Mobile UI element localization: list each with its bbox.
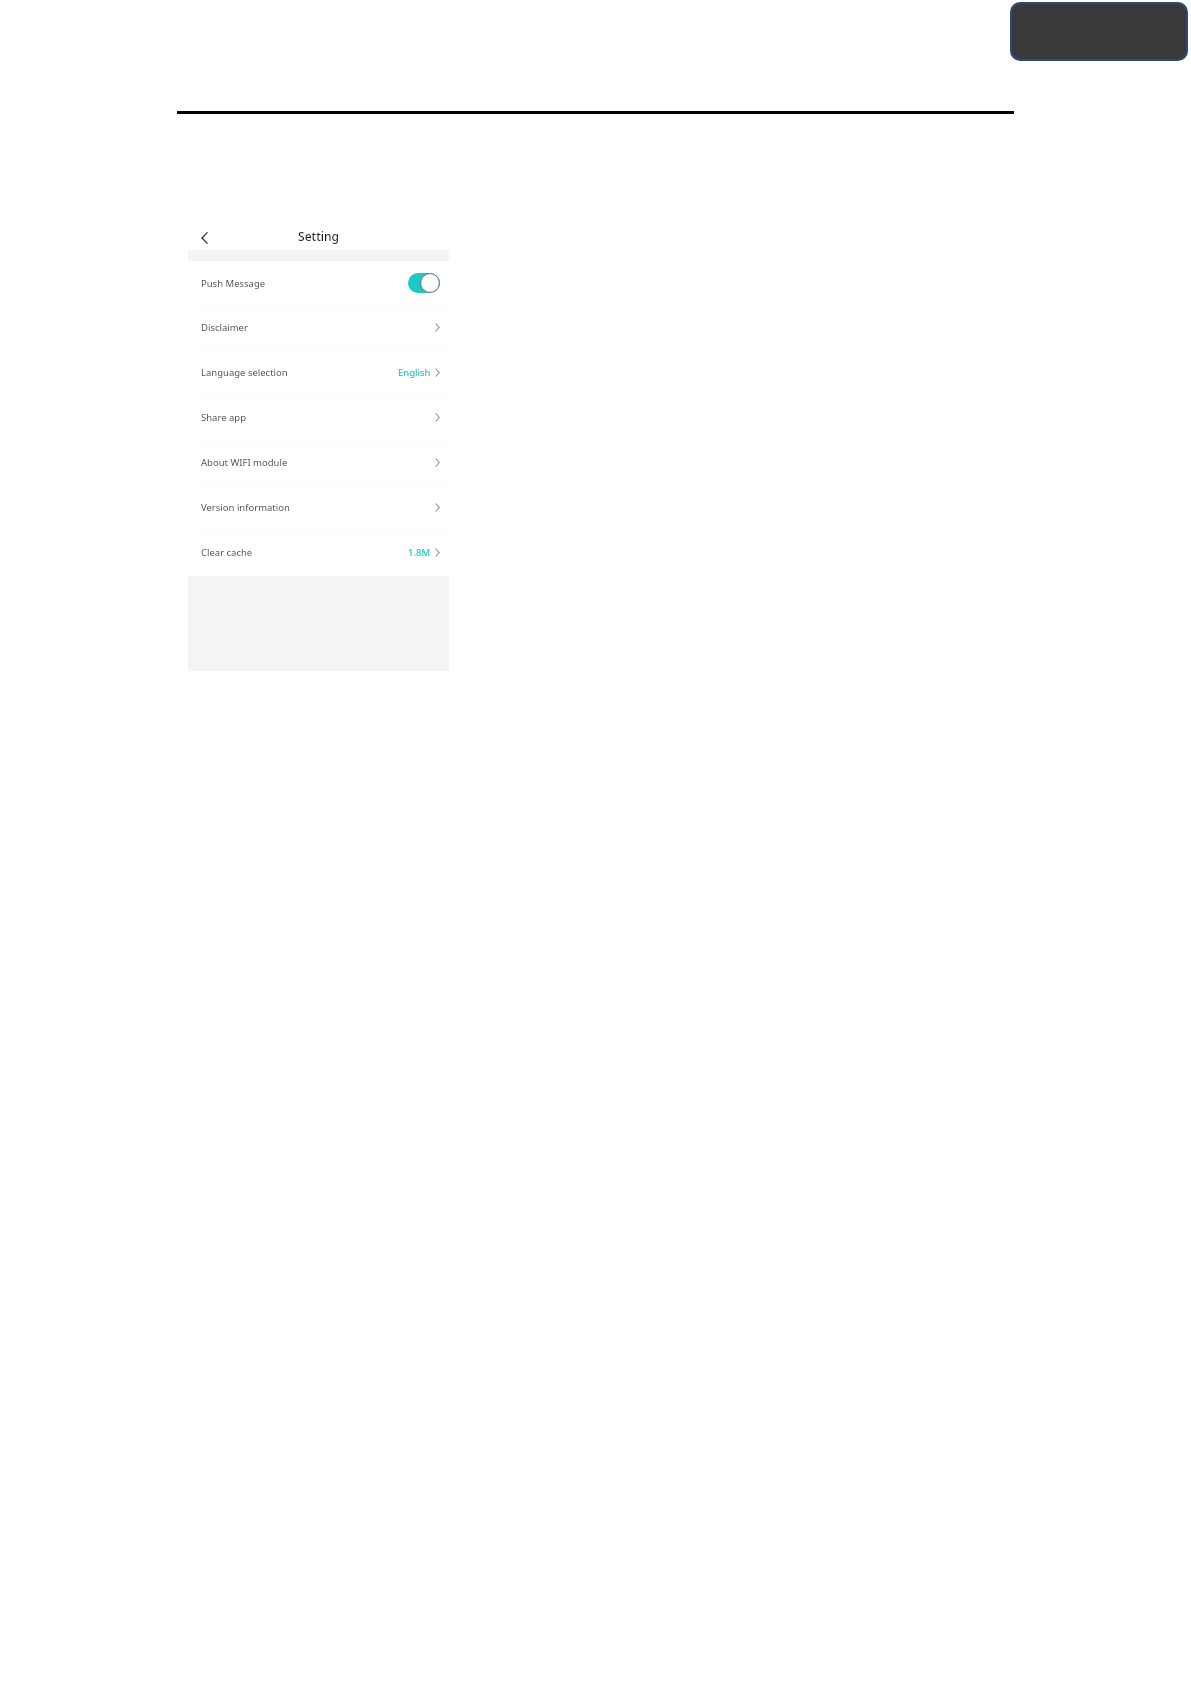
- staticText: Language selection: [201, 366, 288, 379]
- button[interactable]: Disclaimer: [188, 306, 449, 351]
- staticText: Setting: [298, 228, 339, 244]
- staticText: Share app: [201, 411, 246, 424]
- staticText: English: [398, 366, 431, 379]
- staticText: Disclaimer: [201, 321, 248, 334]
- staticText: Push Message: [201, 277, 266, 290]
- button[interactable]: Clear cache: [188, 531, 449, 576]
- staticText: Clear cache: [201, 546, 253, 559]
- button[interactable]: About WIFI module: [188, 441, 449, 486]
- button[interactable]: Share app: [188, 396, 449, 441]
- button[interactable]: Language selection: [188, 351, 449, 396]
- staticText: 1.8M: [408, 546, 431, 559]
- staticText: Version information: [201, 501, 290, 514]
- staticText: About WIFI module: [201, 456, 288, 469]
- button[interactable]: Back: [196, 230, 212, 246]
- button[interactable]: Toggle Push Message: [408, 273, 440, 293]
- button[interactable]: Push Message: [188, 261, 449, 306]
- button[interactable]: Version information: [188, 486, 449, 531]
